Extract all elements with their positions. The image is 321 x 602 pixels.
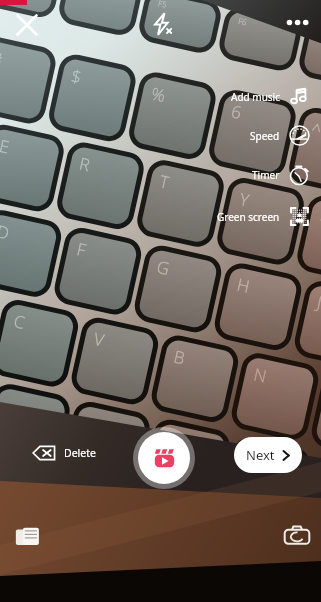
button[interactable]: Close: [13, 11, 41, 39]
button[interactable]: Add music: [230, 85, 311, 108]
button[interactable]: Timer: [251, 163, 311, 186]
staticText: Next: [246, 446, 275, 464]
button[interactable]: More options: [285, 13, 313, 41]
staticText: Timer: [252, 168, 280, 182]
button[interactable]: Delete: [32, 443, 96, 463]
button[interactable]: Speed: [249, 124, 311, 147]
staticText: Delete: [64, 446, 96, 460]
staticText: Speed: [250, 129, 280, 143]
button[interactable]: Green screen: [216, 205, 311, 228]
button[interactable]: Next: [234, 437, 302, 473]
button[interactable]: Switch camera: [283, 522, 311, 550]
button[interactable]: Record: [133, 427, 195, 489]
button[interactable]: Flash off: [146, 9, 176, 39]
button[interactable]: Gallery: [12, 520, 44, 552]
staticText: Add music: [231, 90, 280, 104]
staticText: Green screen: [217, 210, 280, 224]
